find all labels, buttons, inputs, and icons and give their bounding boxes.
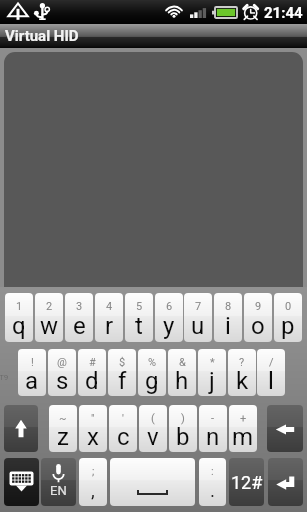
- staticText: j: [209, 367, 215, 395]
- button[interactable]: Backspace: [267, 405, 303, 452]
- staticText: /: [269, 356, 274, 369]
- staticText: q: [12, 312, 26, 340]
- staticText: .: [210, 479, 216, 501]
- button[interactable]: 2: [35, 293, 63, 342]
- staticText: ~: [59, 412, 67, 425]
- button[interactable]: 1: [5, 293, 33, 342]
- staticText: 8: [225, 300, 232, 313]
- button[interactable]: 6: [155, 293, 183, 342]
- staticText: d: [85, 367, 99, 395]
- button[interactable]: 9: [244, 293, 272, 342]
- button[interactable]: ": [79, 405, 107, 452]
- button[interactable]: ': [109, 405, 137, 452]
- button[interactable]: -: [199, 405, 227, 452]
- staticText: g: [145, 367, 159, 395]
- staticText: k: [236, 367, 249, 395]
- button[interactable]: $: [108, 349, 136, 396]
- staticText: ;: [92, 465, 95, 478]
- staticText: $: [119, 356, 126, 369]
- staticText: !: [31, 356, 34, 369]
- staticText: ?: [239, 356, 245, 369]
- button[interactable]: ;: [79, 458, 107, 506]
- button[interactable]: :: [199, 458, 226, 506]
- staticText: e: [73, 312, 86, 340]
- staticText: ': [122, 412, 124, 425]
- staticText: XT9: [0, 373, 9, 382]
- button[interactable]: 12#: [229, 458, 264, 506]
- staticText: EN: [50, 483, 67, 498]
- button[interactable]: Hide keyboard: [4, 458, 39, 506]
- staticText: -: [211, 412, 215, 425]
- staticText: o: [251, 312, 265, 340]
- staticText: %: [148, 356, 157, 369]
- staticText: ": [91, 412, 95, 425]
- button[interactable]: *: [198, 349, 226, 396]
- staticText: 21:44: [264, 4, 303, 22]
- staticText: u: [191, 312, 205, 340]
- button[interactable]: ): [169, 405, 197, 452]
- button[interactable]: 7: [184, 293, 212, 342]
- staticText: #: [89, 356, 96, 369]
- staticText: @: [57, 356, 67, 369]
- button[interactable]: /: [257, 349, 285, 396]
- button[interactable]: ~: [49, 405, 77, 452]
- button[interactable]: !: [18, 349, 46, 396]
- staticText: 6: [166, 300, 173, 313]
- staticText: 5: [136, 300, 143, 313]
- staticText: t: [135, 312, 143, 340]
- staticText: (: [151, 412, 155, 425]
- staticText: ): [181, 412, 185, 425]
- button[interactable]: &: [168, 349, 196, 396]
- button[interactable]: 8: [214, 293, 242, 342]
- button[interactable]: Voice input: [41, 458, 76, 506]
- staticText: 2: [46, 300, 53, 313]
- button[interactable]: 3: [65, 293, 93, 342]
- staticText: a: [25, 367, 39, 395]
- button[interactable]: Enter: [268, 458, 303, 506]
- staticText: n: [206, 423, 220, 451]
- staticText: 12#: [231, 472, 263, 493]
- staticText: m: [232, 423, 254, 451]
- button[interactable]: Space: [110, 458, 195, 506]
- button[interactable]: %: [138, 349, 166, 396]
- staticText: b: [176, 423, 190, 451]
- staticText: +: [240, 412, 247, 425]
- staticText: &: [179, 356, 186, 369]
- button[interactable]: 5: [125, 293, 153, 342]
- staticText: w: [40, 312, 59, 340]
- button[interactable]: @: [48, 349, 76, 396]
- staticText: h: [175, 367, 189, 395]
- staticText: 7: [195, 300, 202, 313]
- button[interactable]: #: [78, 349, 106, 396]
- staticText: z: [57, 423, 69, 451]
- staticText: f: [118, 367, 127, 395]
- staticText: 3: [76, 300, 83, 313]
- staticText: 1: [16, 300, 23, 313]
- staticText: x: [87, 423, 99, 451]
- staticText: p: [281, 312, 295, 340]
- button[interactable]: 4: [95, 293, 123, 342]
- staticText: :: [211, 465, 214, 478]
- button[interactable]: (: [139, 405, 167, 452]
- staticText: ,: [91, 479, 95, 501]
- button[interactable]: +: [229, 405, 257, 452]
- staticText: 0: [285, 300, 292, 313]
- button[interactable]: 0: [274, 293, 302, 342]
- button[interactable]: ?: [228, 349, 256, 396]
- button[interactable]: Shift: [4, 405, 38, 452]
- staticText: v: [147, 423, 159, 451]
- staticText: Virtual HID: [5, 27, 79, 45]
- staticText: 9: [255, 300, 262, 313]
- staticText: y: [163, 312, 175, 340]
- staticText: s: [56, 367, 69, 395]
- staticText: c: [117, 423, 130, 451]
- staticText: i: [225, 312, 231, 340]
- staticText: 4: [106, 300, 113, 313]
- staticText: *: [210, 356, 215, 369]
- staticText: l: [268, 367, 274, 395]
- staticText: r: [105, 312, 114, 340]
